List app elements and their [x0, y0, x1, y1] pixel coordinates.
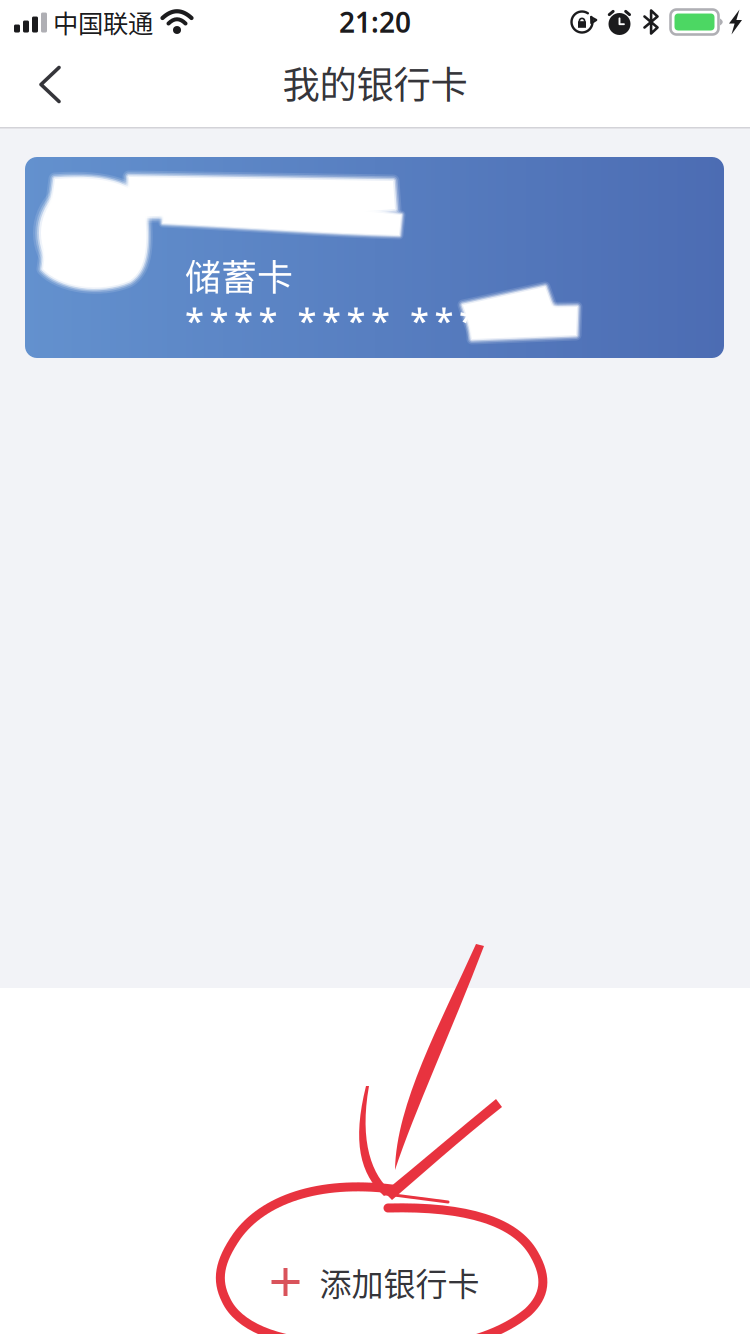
staticText: 储蓄卡 [185, 249, 293, 301]
staticText: **** **** **** [185, 297, 502, 343]
staticText: 21:20 [339, 3, 411, 41]
staticText: 我的银行卡 [282, 55, 467, 110]
button[interactable]: 添加银行卡 [0, 1230, 750, 1334]
staticText: 中国联通 [53, 4, 153, 40]
button[interactable]: 返回 [0, 44, 88, 127]
staticText: 添加银行卡 [319, 1259, 479, 1305]
